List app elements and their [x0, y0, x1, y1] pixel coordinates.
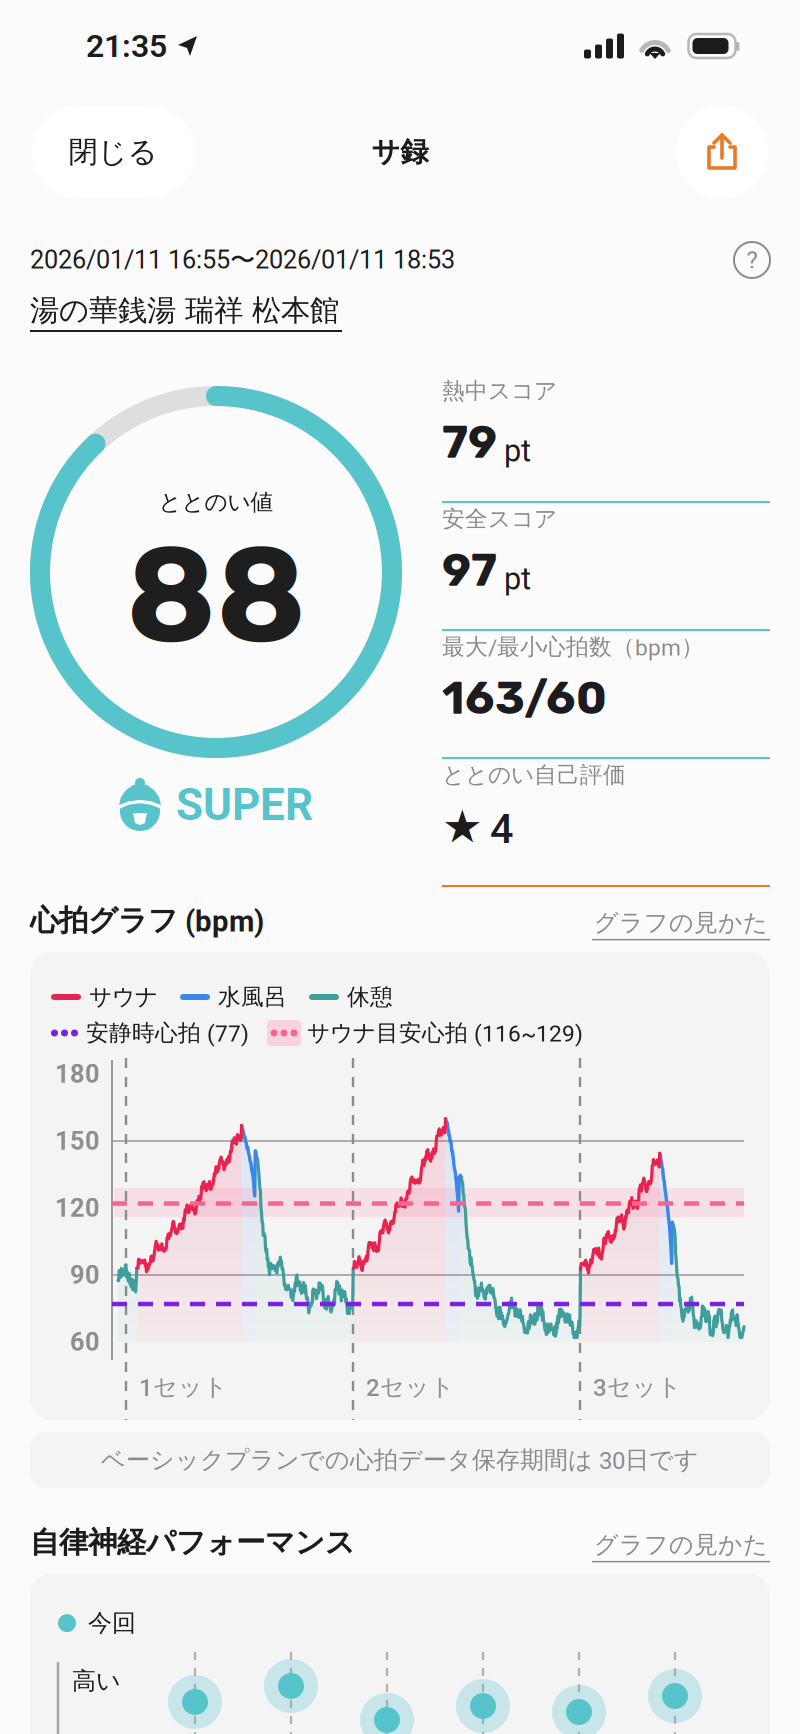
staticText: 180	[55, 1059, 100, 1089]
staticText: 97	[442, 543, 497, 597]
staticText: 自律神経パフォーマンス	[30, 1524, 355, 1561]
staticText: 水風呂	[218, 983, 287, 1011]
staticText: ?	[746, 246, 757, 274]
staticText: 最大/最小心拍数（bpm）	[442, 633, 704, 661]
staticText: 熱中スコア	[442, 377, 557, 405]
staticText: 150	[55, 1126, 100, 1156]
staticText: サウナ	[89, 983, 158, 1011]
staticText: pt	[504, 433, 531, 469]
staticText: 88	[126, 517, 306, 675]
staticText: 2026/01/11 16:55〜2026/01/11 18:53	[30, 244, 455, 276]
staticText: 79	[442, 415, 497, 469]
staticText: 2セット	[366, 1372, 455, 1402]
staticText: 安静時心拍 (77)	[86, 1019, 249, 1047]
button[interactable]: ヘルプ	[734, 242, 770, 278]
staticText: 心拍グラフ (bpm)	[30, 902, 264, 939]
staticText: 21:35	[86, 27, 167, 65]
staticText: ととのい値	[158, 488, 273, 517]
staticText: 休憩	[347, 983, 393, 1011]
button[interactable]: グラフの見かた	[592, 1528, 770, 1564]
staticText: 湯の華銭湯 瑞祥 松本館	[30, 292, 339, 329]
button[interactable]: 共有	[676, 106, 768, 198]
button[interactable]: グラフの見かた	[592, 906, 770, 942]
staticText: 60	[70, 1327, 100, 1357]
staticText: 3セット	[593, 1372, 682, 1402]
staticText: 高い	[72, 1666, 121, 1696]
staticText: 安全スコア	[442, 505, 557, 533]
staticText: グラフの見かた	[594, 908, 768, 938]
staticText: 4	[490, 805, 513, 853]
staticText: ★	[442, 800, 483, 853]
staticText: 今回	[88, 1608, 136, 1638]
staticText: SUPER	[176, 779, 313, 831]
staticText: ととのい自己評価	[442, 761, 626, 789]
staticText: 120	[55, 1193, 100, 1223]
staticText: グラフの見かた	[594, 1530, 768, 1560]
staticText: ベーシックプランでの心拍データ保存期間は 30日です	[101, 1445, 699, 1475]
staticText: サウナ目安心拍 (116~129)	[307, 1019, 583, 1047]
button[interactable]: 閉じる	[32, 106, 194, 198]
staticText: 90	[70, 1260, 100, 1290]
staticText: 1セット	[139, 1372, 228, 1402]
staticText: サ録	[371, 134, 428, 170]
staticText: pt	[504, 561, 531, 597]
staticText: 閉じる	[68, 133, 157, 170]
staticText: 163/60	[442, 671, 607, 725]
